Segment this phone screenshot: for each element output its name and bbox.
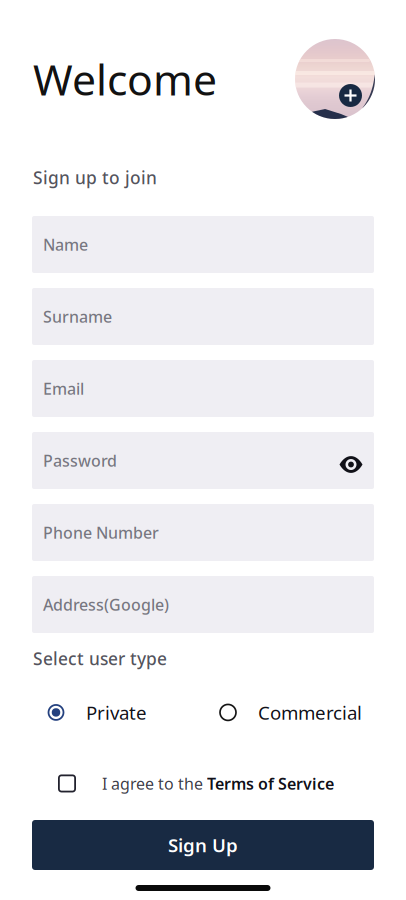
- button[interactable]: Surname: [32, 288, 374, 345]
- button[interactable]: Phone Number: [32, 504, 374, 561]
- button[interactable]: Password: [32, 432, 374, 489]
- staticText: Email: [43, 378, 84, 399]
- staticText: I agree to the: [102, 773, 207, 794]
- staticText: Select user type: [33, 647, 167, 670]
- staticText: Address(Google): [43, 594, 169, 615]
- staticText: Sign Up: [168, 833, 238, 857]
- staticText: Commercial: [258, 700, 362, 725]
- staticText: Welcome: [33, 51, 217, 107]
- staticText: Password: [43, 450, 117, 471]
- button[interactable]: Name: [32, 216, 374, 273]
- staticText: Terms of Service: [207, 773, 334, 794]
- button[interactable]: Private: [47, 700, 219, 725]
- button[interactable]: I agree to the: [58, 773, 386, 794]
- button[interactable]: Commercial: [219, 700, 362, 725]
- staticText: Name: [43, 234, 88, 255]
- button[interactable]: Add profile photo: [295, 39, 375, 119]
- button[interactable]: Sign Up: [32, 820, 374, 870]
- button[interactable]: Address(Google): [32, 576, 374, 633]
- staticText: Sign up to join: [33, 166, 157, 189]
- staticText: Phone Number: [43, 522, 159, 543]
- staticText: Surname: [43, 306, 112, 327]
- button[interactable]: Email: [32, 360, 374, 417]
- staticText: Private: [86, 700, 147, 725]
